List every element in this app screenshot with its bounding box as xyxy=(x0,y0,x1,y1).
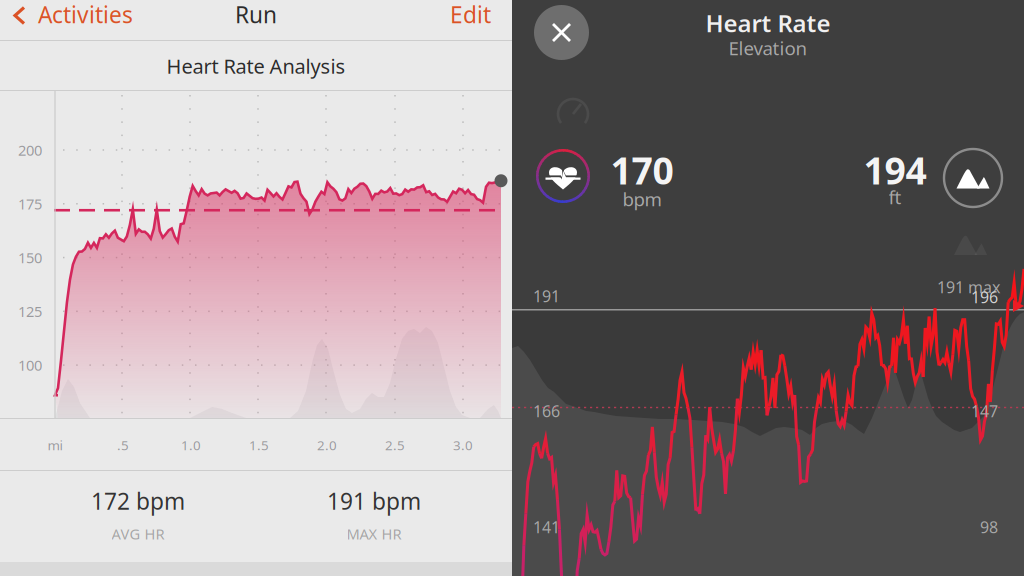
staticText: 1.5 xyxy=(249,436,269,454)
staticText: mi xyxy=(47,436,62,454)
staticText: 191 max xyxy=(937,276,1000,298)
button[interactable]: Close xyxy=(534,5,589,60)
staticText: Heart Rate xyxy=(705,7,830,39)
staticText: Run xyxy=(235,0,277,29)
staticText: bpm xyxy=(622,187,661,211)
button[interactable]: Edit xyxy=(381,0,512,29)
staticText: Edit xyxy=(450,0,491,29)
staticText: 191 xyxy=(533,285,560,307)
staticText: 100 xyxy=(18,355,42,375)
staticText: 2.0 xyxy=(317,436,337,454)
staticText: .5 xyxy=(117,436,129,454)
button[interactable]: Activities xyxy=(0,0,180,29)
staticText: 2.5 xyxy=(385,436,405,454)
staticText: 141 xyxy=(533,516,560,538)
staticText: AVG HR xyxy=(111,524,164,544)
staticText: 191 bpm xyxy=(327,486,421,516)
staticText: 172 bpm xyxy=(91,486,185,516)
staticText: 166 xyxy=(533,400,560,422)
staticText: 125 xyxy=(18,302,42,321)
staticText: 3.0 xyxy=(453,436,473,454)
staticText: Elevation xyxy=(728,36,807,60)
staticText: ft xyxy=(888,185,901,209)
staticText: Activities xyxy=(38,0,133,29)
staticText: 194 xyxy=(863,145,926,195)
staticText: 147 xyxy=(971,400,998,422)
staticText: MAX HR xyxy=(346,524,401,544)
staticText: 98 xyxy=(980,516,998,538)
staticText: 170 xyxy=(610,145,673,195)
staticText: 150 xyxy=(18,248,42,267)
staticText: 1.0 xyxy=(181,436,201,454)
staticText: Heart Rate Analysis xyxy=(166,53,345,79)
staticText: 196 xyxy=(971,286,998,308)
staticText: 175 xyxy=(18,194,42,213)
staticText: 200 xyxy=(18,140,42,160)
